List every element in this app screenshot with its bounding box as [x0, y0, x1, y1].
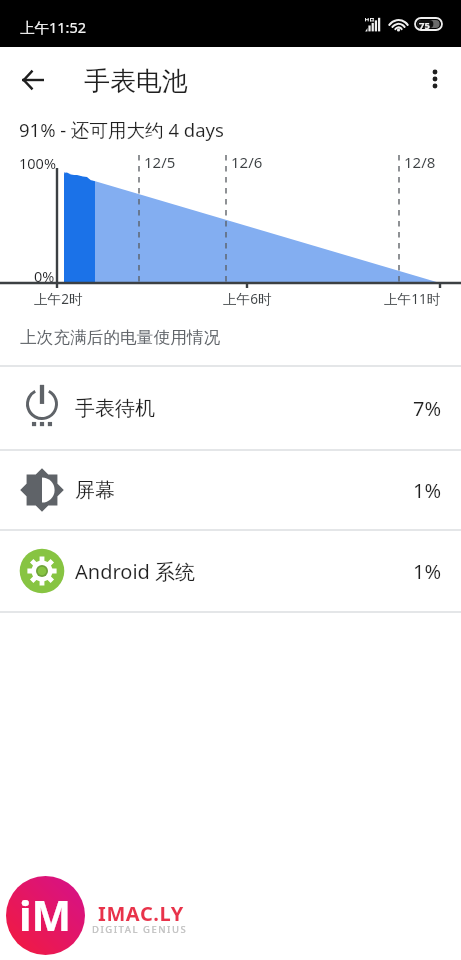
staticText: 12/6	[231, 152, 263, 172]
button[interactable]: Android 系统	[0, 531, 461, 611]
staticText: 上午2时	[34, 289, 83, 308]
staticText: DIGITAL GENIUS	[92, 923, 188, 936]
staticText: iM	[19, 886, 72, 943]
staticText: 手表待机	[75, 396, 155, 421]
staticText: 1%	[413, 558, 442, 585]
button[interactable]: 屏幕	[0, 451, 461, 529]
staticText: 7%	[413, 395, 442, 422]
button[interactable]: Back	[5, 52, 61, 108]
staticText: 100%	[19, 153, 56, 173]
staticText: IMAC.LY	[98, 900, 184, 927]
staticText: 12/5	[144, 152, 176, 172]
staticText: 上午6时	[223, 289, 272, 308]
staticText: 75	[419, 19, 430, 32]
staticText: 手表电池	[84, 65, 188, 98]
staticText: Android 系统	[75, 558, 196, 585]
staticText: 12/8	[404, 152, 436, 172]
staticText: 0%	[34, 266, 55, 286]
staticText: 1%	[413, 477, 442, 504]
staticText: 上午11:52	[20, 17, 87, 37]
staticText: 上午11时	[384, 289, 441, 308]
staticText: 屏幕	[75, 478, 115, 503]
staticText: 上次充满后的电量使用情况	[20, 327, 221, 348]
button[interactable]: More options	[407, 51, 461, 107]
button[interactable]: 手表待机	[0, 367, 461, 449]
staticText: 91% - 还可用大约 4 days	[19, 117, 224, 142]
